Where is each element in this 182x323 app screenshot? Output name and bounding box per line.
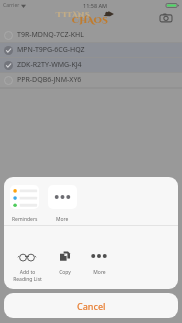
button[interactable]: Copy — [46, 250, 84, 276]
staticText: Add to Reading List — [13, 269, 42, 282]
button[interactable]: Reminders — [10, 185, 39, 223]
staticText: TITANS — [56, 10, 91, 20]
staticText: Cancel — [77, 300, 106, 312]
staticText: Copy — [59, 269, 71, 276]
button[interactable]: ZDK-R2TY-WMG-KJ4 — [0, 58, 182, 72]
button[interactable]: Cancel — [4, 293, 178, 318]
staticText: ZDK-R2TY-WMG-KJ4 — [17, 60, 82, 70]
staticText: More — [93, 269, 106, 276]
button[interactable]: T9R-MDNQ-7CZ-KHL — [0, 28, 182, 42]
staticText: More — [56, 216, 69, 223]
staticText: PPR-DQB6-JNM-XY6 — [17, 75, 82, 85]
button[interactable]: PPR-DQB6-JNM-XY6 — [0, 73, 182, 87]
staticText: T9R-MDNQ-7CZ-KHL — [17, 30, 84, 40]
staticText: MPN-T9PG-6CG-HQZ — [17, 45, 85, 55]
button[interactable]: MPN-T9PG-6CG-HQZ — [0, 43, 182, 57]
staticText: Reminders — [12, 216, 38, 223]
button[interactable]: More — [80, 250, 118, 276]
button[interactable]: Camera — [160, 12, 172, 24]
staticText: 11:58 AM — [83, 2, 108, 9]
staticText: CHAOS — [72, 15, 109, 26]
button[interactable]: Add to Reading List — [8, 250, 46, 282]
staticText: Carrier — [3, 2, 20, 9]
button[interactable]: More — [48, 185, 77, 223]
